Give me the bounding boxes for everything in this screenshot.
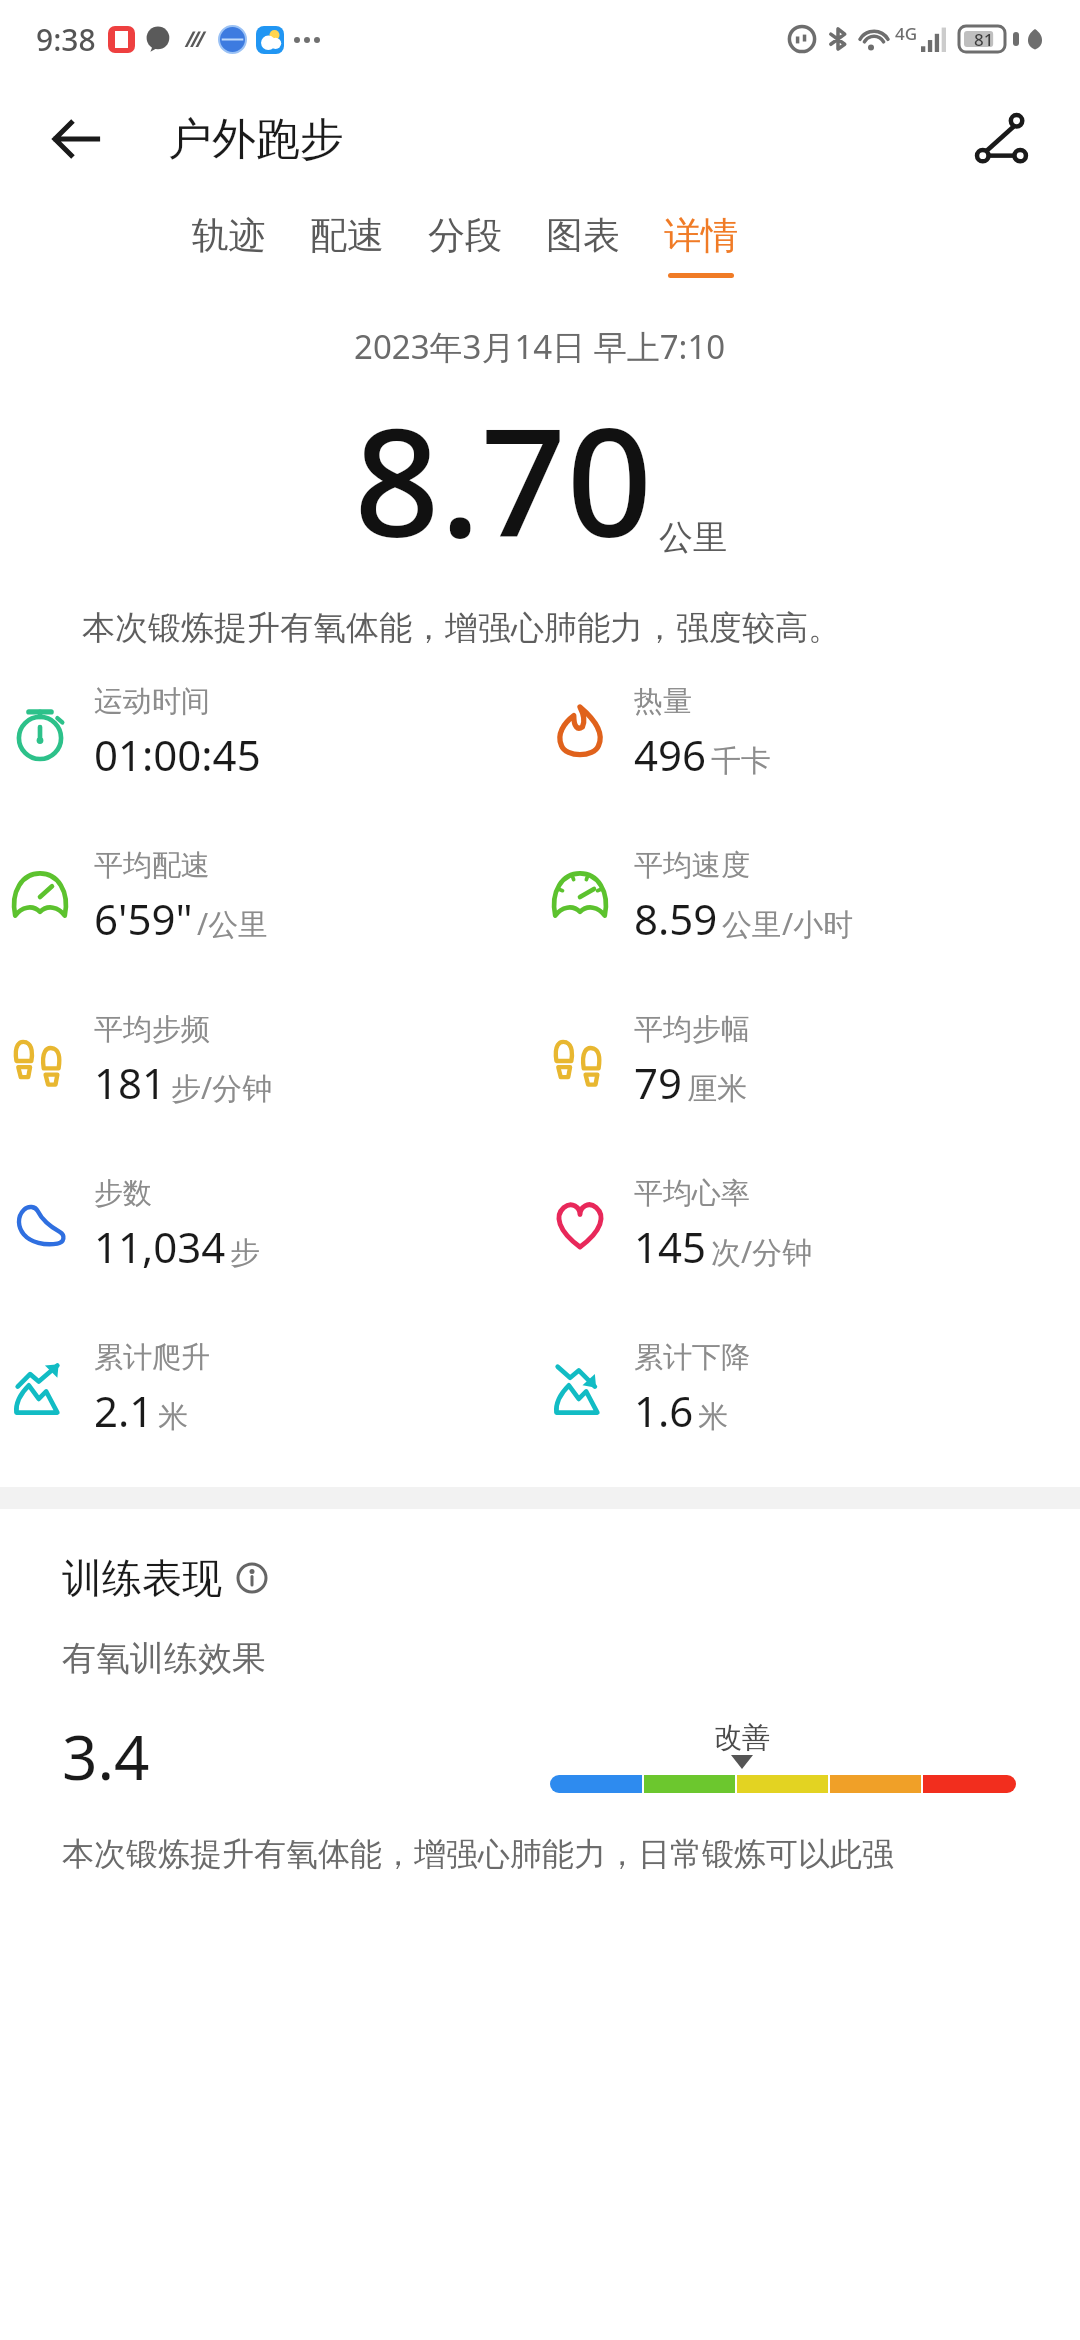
staticText: 米 bbox=[698, 1398, 728, 1436]
staticText: 01:00:45 bbox=[94, 726, 261, 783]
staticText: 有氧训练效果 bbox=[62, 1637, 266, 1680]
button[interactable]: 平均步幅 bbox=[540, 1011, 1080, 1111]
button[interactable]: 分段 bbox=[406, 200, 524, 290]
button[interactable]: 训练表现 bbox=[62, 1553, 268, 1603]
other: Info bbox=[236, 1562, 268, 1594]
staticText: /公里 bbox=[197, 903, 269, 944]
staticText: 公里/小时 bbox=[722, 903, 854, 944]
staticText: 181 bbox=[94, 1054, 167, 1111]
staticText: 千卡 bbox=[711, 742, 771, 780]
staticText: 11,034 bbox=[94, 1218, 226, 1275]
staticText: 分段 bbox=[428, 212, 502, 259]
staticText: 平均配速 bbox=[94, 847, 210, 884]
button[interactable]: 轨迹 bbox=[170, 200, 288, 290]
button[interactable]: 配速 bbox=[288, 200, 406, 290]
staticText: 训练表现 bbox=[62, 1553, 222, 1603]
staticText: 热量 bbox=[634, 683, 692, 720]
staticText: 4G bbox=[895, 22, 918, 45]
staticText: 3.4 bbox=[62, 1714, 150, 1798]
staticText: 2023年3月14日 早上7:10 bbox=[354, 324, 726, 369]
button[interactable]: Back bbox=[40, 103, 112, 175]
button[interactable]: 累计下降 bbox=[540, 1339, 1080, 1439]
staticText: 1.6 bbox=[634, 1382, 694, 1439]
button[interactable]: Share bbox=[966, 103, 1038, 175]
staticText: 公里 bbox=[659, 516, 727, 559]
staticText: 本次锻炼提升有氧体能，增强心肺能力，强度较高。 bbox=[82, 607, 1020, 649]
staticText: 累计下降 bbox=[634, 1339, 750, 1376]
staticText: 2.1 bbox=[94, 1382, 154, 1439]
staticText: 81 bbox=[974, 28, 994, 51]
staticText: 轨迹 bbox=[192, 212, 266, 259]
staticText: 平均速度 bbox=[634, 847, 750, 884]
staticText: 详情 bbox=[664, 212, 738, 259]
button[interactable]: 平均步频 bbox=[0, 1011, 540, 1111]
staticText: 步数 bbox=[94, 1175, 152, 1212]
staticText: 平均步频 bbox=[94, 1011, 210, 1048]
button[interactable]: 累计爬升 bbox=[0, 1339, 540, 1439]
staticText: 图表 bbox=[546, 212, 620, 259]
button[interactable]: 热量 bbox=[540, 683, 1080, 783]
staticText: 配速 bbox=[310, 212, 384, 259]
staticText: 步/分钟 bbox=[171, 1067, 273, 1108]
button[interactable]: 平均速度 bbox=[540, 847, 1080, 947]
staticText: 户外跑步 bbox=[168, 112, 344, 167]
staticText: 运动时间 bbox=[94, 683, 210, 720]
staticText: 改善 bbox=[714, 1720, 770, 1755]
staticText: 平均心率 bbox=[634, 1175, 750, 1212]
button[interactable]: 图表 bbox=[524, 200, 642, 290]
staticText: 厘米 bbox=[687, 1070, 747, 1108]
staticText: 496 bbox=[634, 726, 707, 783]
staticText: 8.70 bbox=[354, 377, 653, 581]
button[interactable]: 运动时间 bbox=[0, 683, 540, 783]
staticText: 8.59 bbox=[634, 890, 718, 947]
staticText: 平均步幅 bbox=[634, 1011, 750, 1048]
staticText: 79 bbox=[634, 1054, 683, 1111]
staticText: 本次锻炼提升有氧体能，增强心肺能力，日常锻炼可以此强 bbox=[62, 1834, 894, 1874]
staticText: 次/分钟 bbox=[711, 1231, 813, 1272]
staticText: 累计爬升 bbox=[94, 1339, 210, 1376]
button[interactable]: 平均心率 bbox=[540, 1175, 1080, 1275]
staticText: 6'59" bbox=[94, 890, 193, 947]
button[interactable]: 步数 bbox=[0, 1175, 540, 1275]
button[interactable]: 平均配速 bbox=[0, 847, 540, 947]
button[interactable]: 详情 bbox=[642, 200, 760, 290]
staticText: 145 bbox=[634, 1218, 707, 1275]
staticText: 步 bbox=[230, 1234, 260, 1272]
staticText: 米 bbox=[158, 1398, 188, 1436]
staticText: 9:38 bbox=[36, 19, 96, 60]
